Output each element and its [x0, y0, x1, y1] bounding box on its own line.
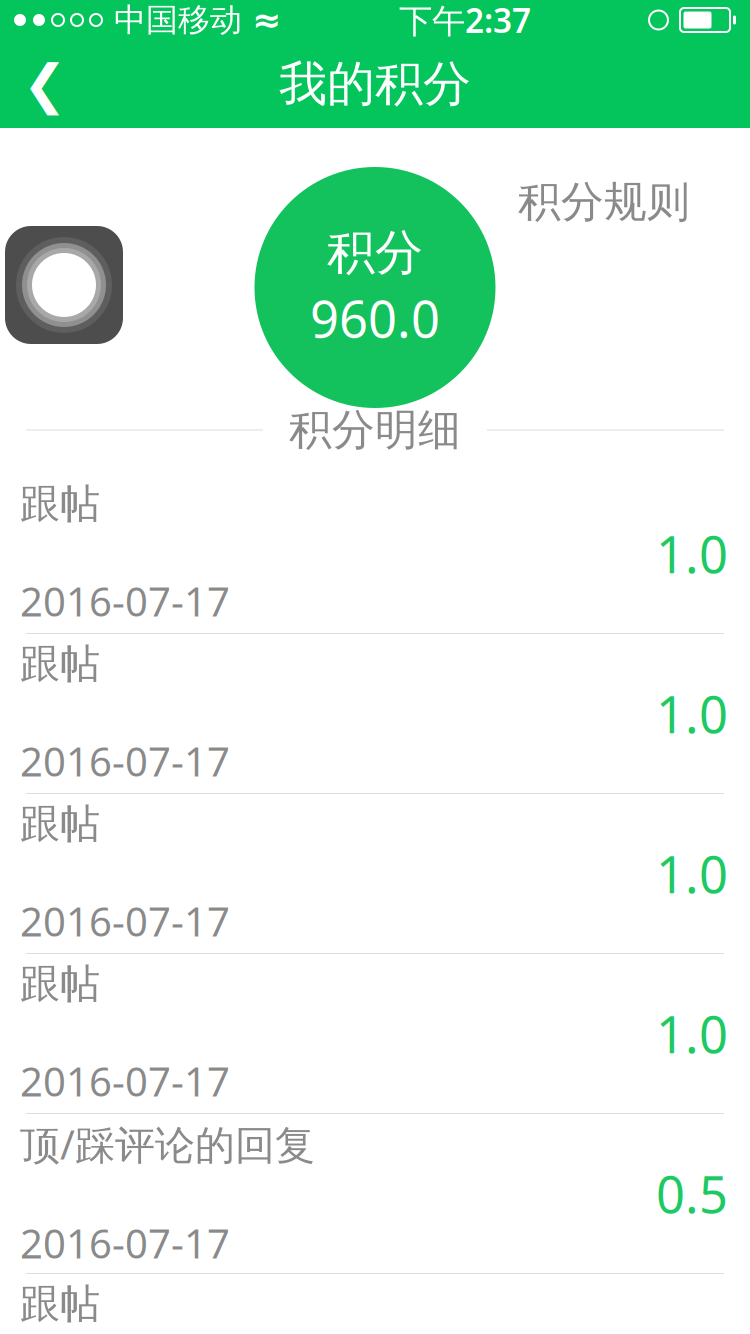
staticText: 0.5	[656, 1160, 728, 1227]
staticText: 2016-07-17	[20, 1054, 230, 1108]
staticText: 跟帖	[20, 799, 100, 848]
staticText: 顶/踩评论的回复	[20, 1117, 315, 1170]
staticText: 积分规则	[518, 176, 690, 228]
staticText: 1.0	[656, 1000, 728, 1067]
staticText: 1.0	[656, 840, 728, 907]
button[interactable]: 跟帖	[0, 474, 750, 634]
staticText: ≈	[252, 0, 281, 40]
staticText: 2016-07-17	[20, 574, 230, 628]
button[interactable]: 顶/踩评论的回复	[0, 1114, 750, 1274]
staticText: 2016-07-17	[20, 734, 230, 788]
staticText: 跟帖	[20, 479, 100, 528]
staticText: 中国移动	[114, 0, 242, 40]
staticText: 跟帖	[20, 1279, 100, 1328]
staticText: 跟帖	[20, 959, 100, 1008]
button[interactable]: 跟帖	[0, 794, 750, 954]
staticText: 2016-07-17	[20, 1216, 230, 1270]
staticText: 跟帖	[20, 639, 100, 688]
button[interactable]: Back	[0, 40, 90, 128]
staticText: 积分	[327, 223, 423, 282]
staticText: 积分明细	[289, 404, 461, 456]
staticText: 2016-07-17	[20, 894, 230, 948]
staticText: 我的积分	[279, 54, 471, 113]
staticText: ❮	[22, 54, 67, 114]
staticText: 1.0	[656, 680, 728, 747]
button[interactable]: 跟帖	[0, 634, 750, 794]
button[interactable]: 跟帖	[0, 1274, 750, 1334]
button[interactable]: 跟帖	[0, 954, 750, 1114]
staticText: 1.0	[656, 520, 728, 587]
staticText: 960.0	[310, 284, 440, 352]
button[interactable]: 积分规则	[506, 170, 702, 234]
staticText: 下午2:37	[399, 0, 531, 42]
